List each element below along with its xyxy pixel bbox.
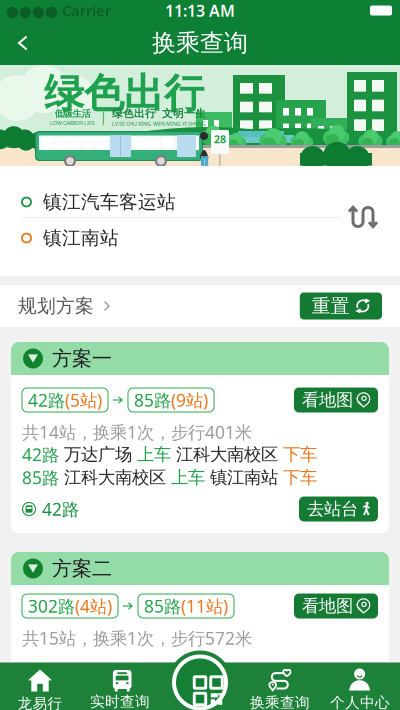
button[interactable]: 镇江汽车客运站 xyxy=(0,184,290,220)
staticText: 规划方案 xyxy=(18,294,94,317)
staticText: 85路 xyxy=(144,594,181,617)
staticText: 看地图 xyxy=(302,389,353,411)
staticText: 方案二 xyxy=(52,556,112,581)
staticText: 重置 xyxy=(312,294,350,317)
button[interactable]: 重置 xyxy=(300,292,382,319)
button[interactable]: Scan QR code xyxy=(168,650,232,710)
staticText: 低碳生活 xyxy=(54,108,90,119)
button[interactable]: 方案一 xyxy=(11,342,389,375)
button[interactable]: 换乘查询 xyxy=(240,662,320,710)
staticText: 85路 xyxy=(22,466,59,489)
staticText: 换乘查询 xyxy=(152,28,248,58)
staticText: (5站) xyxy=(65,388,102,411)
staticText: 下车 xyxy=(283,444,317,465)
button[interactable]: 规划方案 xyxy=(18,294,113,317)
staticText: 镇江南站 xyxy=(43,226,119,249)
button[interactable]: 去站台 xyxy=(299,496,378,521)
button[interactable]: 看地图 xyxy=(294,593,378,618)
button[interactable]: 龙易行 xyxy=(0,662,80,710)
staticText: | xyxy=(100,109,107,125)
staticText: (11站) xyxy=(181,594,228,617)
staticText: 镇江汽车客运站 xyxy=(43,190,176,213)
button[interactable]: Back xyxy=(0,21,46,65)
staticText: LV SE CHU XING WEN MING YI SHENG xyxy=(112,120,206,127)
button[interactable]: 镇江南站 xyxy=(0,220,290,256)
staticText: 28 xyxy=(214,132,226,146)
staticText: 共15站，换乘1次，步行572米 xyxy=(22,626,252,649)
staticText: 上车 xyxy=(137,444,171,465)
staticText: (4站) xyxy=(75,594,112,617)
staticText: 镇江南站 xyxy=(210,467,278,488)
staticText: 42路 xyxy=(28,388,65,411)
staticText: 绿色出行 xyxy=(44,69,204,118)
staticText: 42路 xyxy=(22,443,59,466)
button[interactable]: 个人中心 xyxy=(320,662,400,710)
staticText: 个人中心 xyxy=(330,693,390,710)
staticText: 实时查询 xyxy=(90,692,150,710)
staticText: 85路 xyxy=(134,388,171,411)
staticText: (9站) xyxy=(171,388,208,411)
staticText: ●●●● Carrier xyxy=(6,1,111,20)
staticText: 11:13 AM xyxy=(165,0,235,21)
staticText: 下车 xyxy=(283,467,317,488)
staticText: 江科大南校区 xyxy=(176,444,278,465)
button[interactable]: 方案二 xyxy=(11,552,389,585)
button[interactable]: 实时查询 xyxy=(80,662,160,710)
staticText: 换乘查询 xyxy=(250,693,310,710)
staticText: 去站台 xyxy=(307,498,358,520)
staticText: 共14站，换乘1次，步行401米 xyxy=(22,420,252,443)
staticText: 绿色出行 文明一生 xyxy=(112,107,206,120)
staticText: 江科大南校区 xyxy=(64,467,166,488)
button[interactable]: Swap stations xyxy=(347,203,379,231)
staticText: 上车 xyxy=(171,467,205,488)
staticText: 龙易行 xyxy=(17,694,62,710)
staticText: 42路 xyxy=(42,497,79,520)
staticText: LOW CARBON LIFE xyxy=(50,119,95,126)
staticText: 万达广场 xyxy=(64,444,132,465)
staticText: 方案一 xyxy=(52,346,112,371)
button[interactable]: 看地图 xyxy=(294,387,378,412)
staticText: 看地图 xyxy=(302,595,353,617)
staticText: 302路 xyxy=(28,594,75,617)
